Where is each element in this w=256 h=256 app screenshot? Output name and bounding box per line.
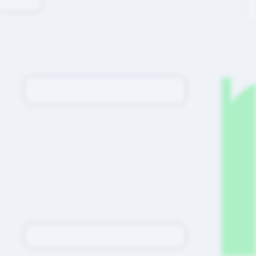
button[interactable]: Activity summary: [0, 0, 256, 256]
